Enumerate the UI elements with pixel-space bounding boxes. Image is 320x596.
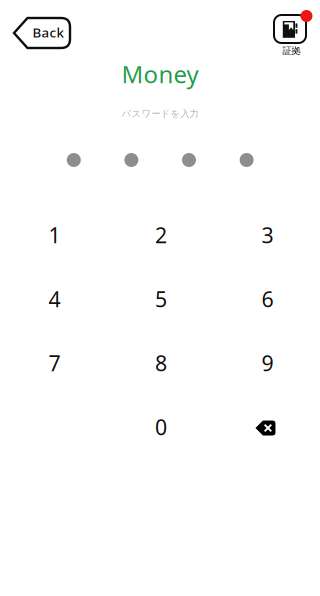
button[interactable]: 0 xyxy=(108,395,214,459)
button[interactable]: Delete xyxy=(214,395,320,459)
button[interactable]: 2 xyxy=(108,203,214,267)
button[interactable]: 8 xyxy=(108,331,214,395)
staticText: 9 xyxy=(261,349,273,377)
staticText: 7 xyxy=(48,349,60,377)
button[interactable]: 5 xyxy=(108,267,214,331)
button[interactable]: 証拠 xyxy=(274,11,312,63)
staticText: 4 xyxy=(48,285,60,313)
button[interactable]: 6 xyxy=(214,267,320,331)
staticText: 1 xyxy=(48,221,60,249)
button[interactable]: 9 xyxy=(214,331,320,395)
button[interactable]: 4 xyxy=(1,267,108,331)
staticText: 証拠 xyxy=(282,45,300,56)
staticText: 5 xyxy=(155,285,167,313)
staticText: 3 xyxy=(261,221,273,249)
staticText: Back xyxy=(32,23,63,41)
staticText: Money xyxy=(121,58,198,90)
staticText: 0 xyxy=(155,413,167,441)
staticText: 8 xyxy=(155,349,167,377)
staticText: 6 xyxy=(261,285,273,313)
button[interactable]: 7 xyxy=(1,331,108,395)
staticText: 2 xyxy=(155,221,167,249)
button[interactable]: Back xyxy=(14,18,70,48)
button[interactable]: 1 xyxy=(1,203,108,267)
button[interactable]: 3 xyxy=(214,203,320,267)
staticText: パスワードを入力 xyxy=(121,108,198,119)
